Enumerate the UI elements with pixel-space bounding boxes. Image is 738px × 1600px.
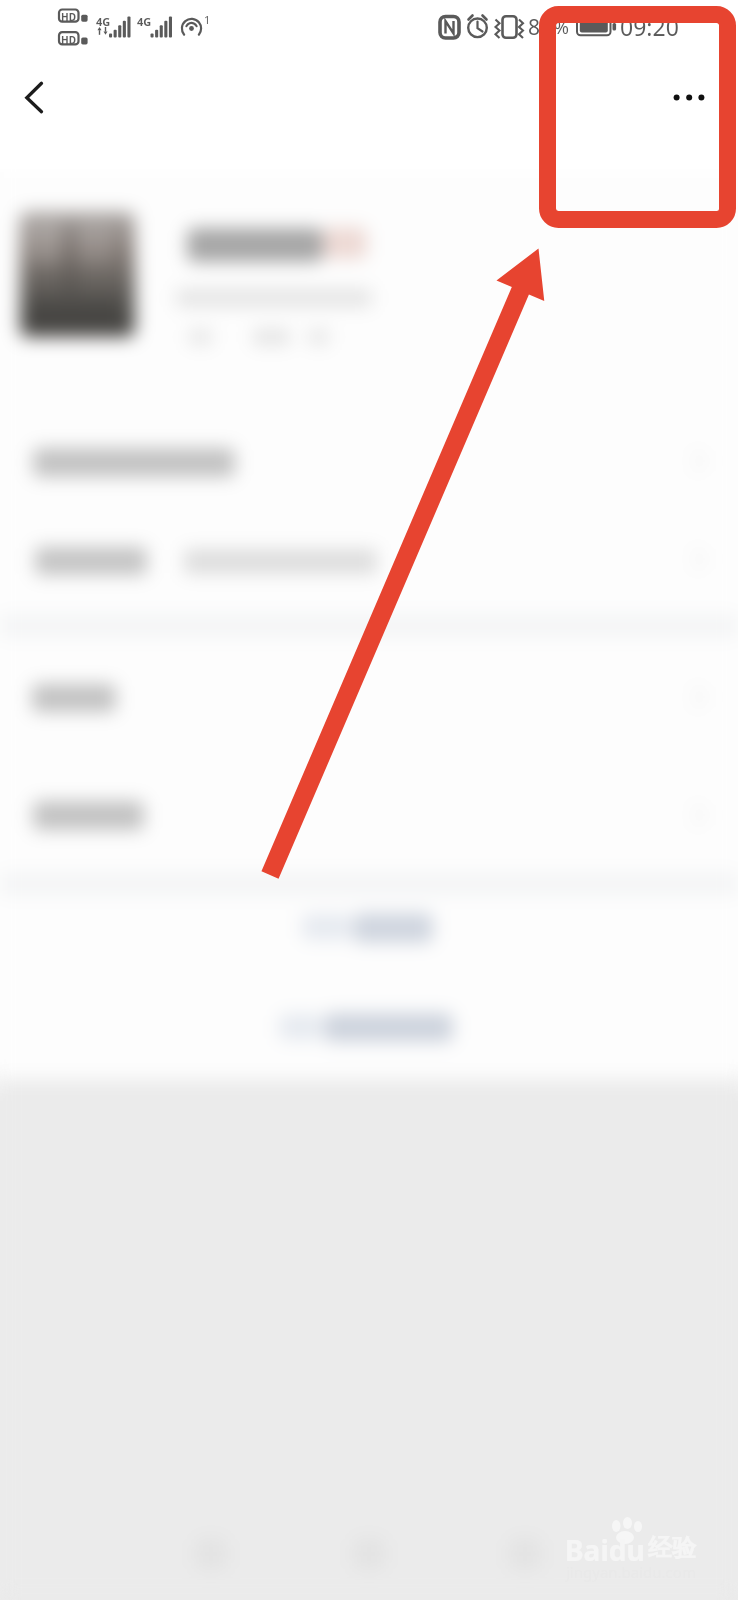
button[interactable]: Invoice [288,896,456,958]
button[interactable]: Help and service [266,996,476,1058]
button[interactable]: Cinema [0,650,738,750]
button[interactable]: Ticket code [0,414,738,512]
button[interactable]: Back [4,67,66,129]
staticText: 4G [137,14,152,29]
staticText: HD [61,33,76,47]
staticText: 经验 [648,1533,696,1563]
staticText: 1 [204,12,211,27]
staticText: Baidu [565,1531,645,1569]
staticText: 8 [528,13,541,42]
staticText: 4G [96,14,111,29]
button[interactable]: More options [661,82,717,114]
button[interactable]: Payment method [0,762,738,870]
button[interactable]: Order number [0,512,738,612]
staticText: % [554,15,569,40]
button[interactable]: Order item [0,180,738,370]
staticText: HD [61,10,76,24]
staticText: 09:20 [620,11,679,42]
